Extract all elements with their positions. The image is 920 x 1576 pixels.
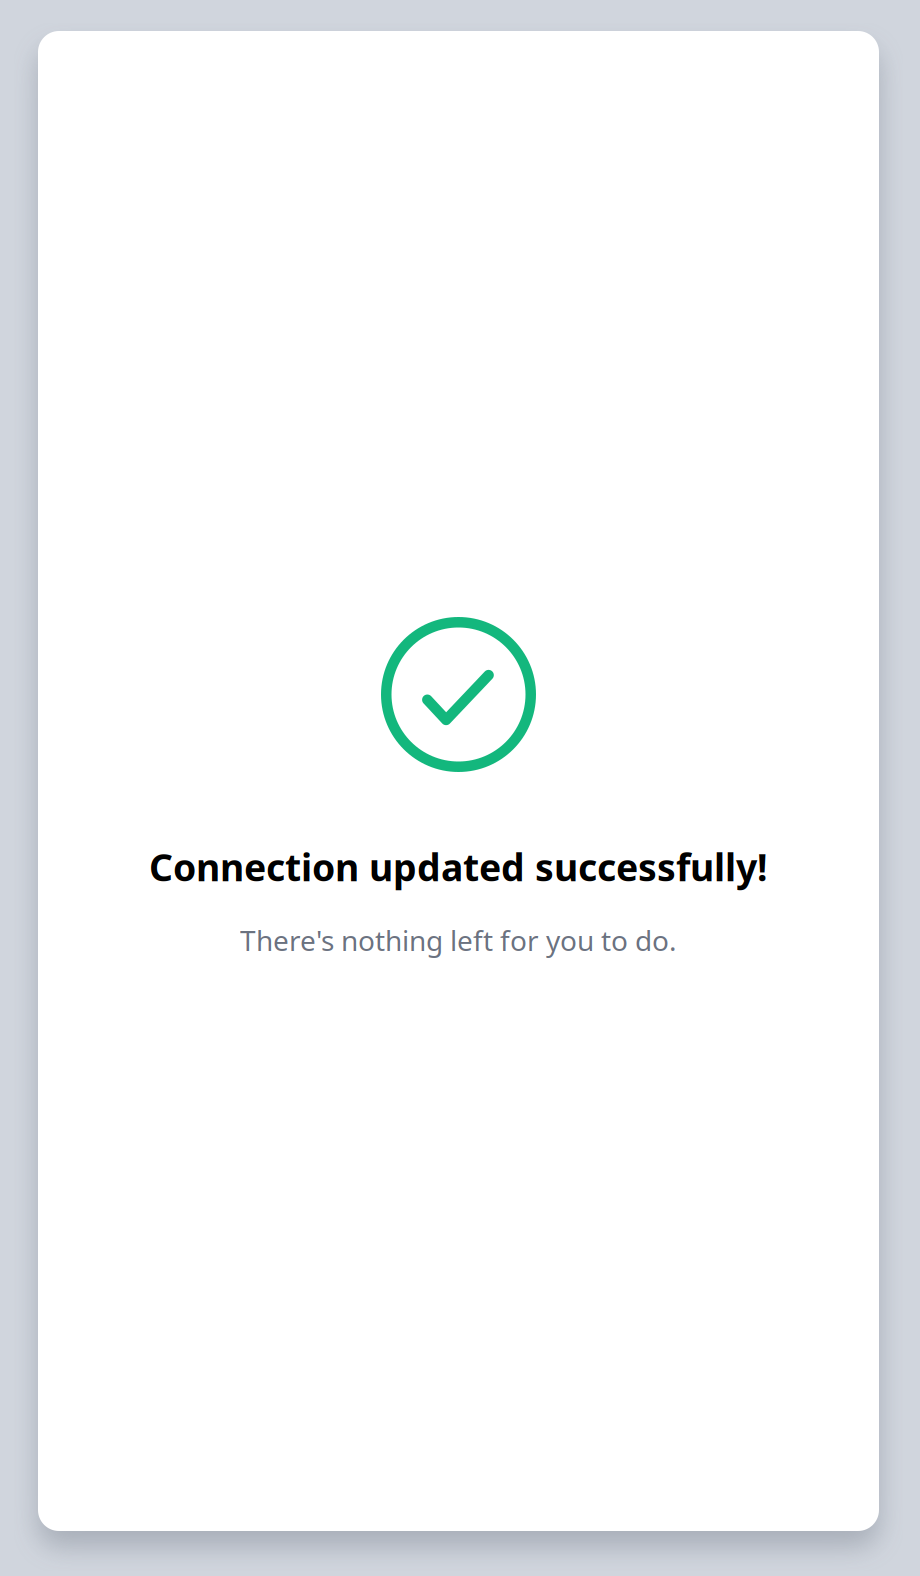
staticText: There's nothing left for you to do. xyxy=(240,922,677,959)
staticText: Connection updated successfully! xyxy=(149,842,768,892)
